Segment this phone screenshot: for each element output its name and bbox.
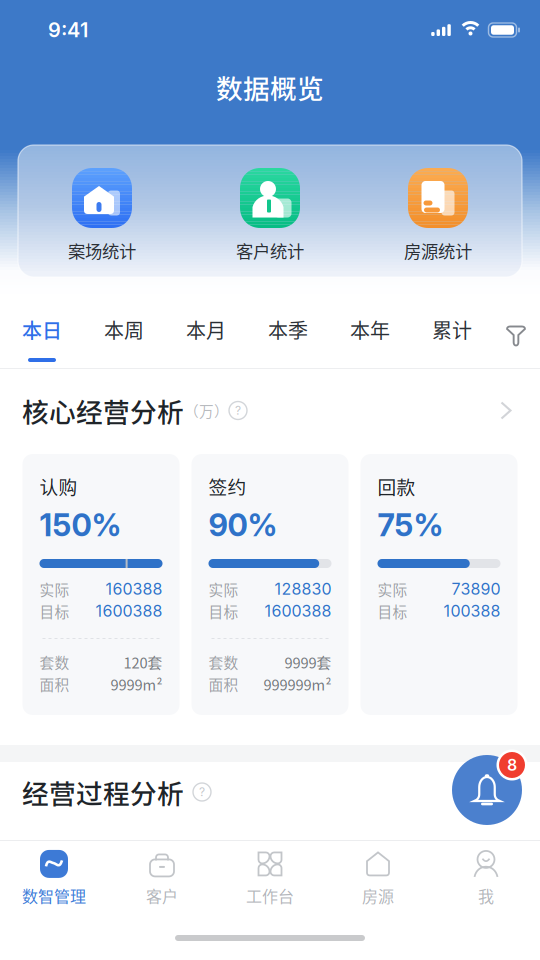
staticText: 8 [507,755,517,775]
staticText: 150% [39,506,121,543]
button[interactable]: 数智管理 [0,847,108,909]
staticText: 数智管理 [22,884,86,907]
staticText: 90% [208,506,277,543]
staticText: 实际 [208,578,238,600]
staticText: 经营过程分析 [22,773,184,811]
staticText: 本日 [22,315,62,344]
button[interactable]: 本日 [1,304,83,368]
staticText: 我 [478,884,494,907]
staticText: 回款 [377,472,415,499]
staticText: 本季 [268,315,308,344]
staticText: 套数 [39,651,69,673]
button[interactable]: 工作台 [216,847,324,909]
button[interactable]: 本月 [165,304,247,368]
staticText: 73890 [451,579,500,599]
staticText: 案场统计 [68,238,136,263]
button[interactable]: 本年 [329,304,411,368]
button[interactable]: Notifications [439,742,535,838]
button[interactable]: 房源 [324,847,432,909]
button[interactable]: 客户统计 [186,145,354,277]
button[interactable]: 我 [432,847,540,909]
staticText: 本周 [104,315,144,344]
staticText: 实际 [39,578,69,600]
staticText: 1600388 [264,601,331,621]
button[interactable]: 回款 [360,454,517,715]
staticText: 目标 [377,600,407,622]
button[interactable]: 案场统计 [18,145,186,277]
button[interactable]: 本季 [247,304,329,368]
staticText: 房源统计 [404,238,472,263]
staticText: 本年 [350,315,390,344]
staticText: 实际 [377,578,407,600]
staticText: 120套 [123,651,162,673]
button[interactable]: 客户 [108,847,216,909]
button[interactable]: Filter [493,304,539,368]
staticText: 目标 [208,600,238,622]
staticText: 房源 [362,884,394,907]
staticText: 认购 [39,472,77,499]
staticText: 客户统计 [236,238,304,263]
staticText: 套数 [208,651,238,673]
staticText: 累计 [432,315,472,344]
staticText: 客户 [146,884,178,907]
button[interactable]: 累计 [411,304,493,368]
button[interactable]: 签约 [191,454,348,715]
staticText: 9999m² [110,673,162,695]
staticText: 128830 [274,579,331,599]
staticText: 面积 [39,673,69,695]
staticText: 160388 [105,579,162,599]
staticText: 9999套 [284,651,331,673]
staticText: 工作台 [246,884,294,907]
staticText: ? [235,403,241,418]
staticText: 999999m² [263,673,331,695]
staticText: 75% [377,506,443,543]
staticText: （万） [184,400,229,421]
staticText: 100388 [443,601,500,621]
staticText: 签约 [208,472,246,499]
staticText: ? [199,785,205,799]
button[interactable]: More [486,388,526,432]
button[interactable]: 房源统计 [354,145,522,277]
staticText: 9:41 [48,18,88,42]
staticText: 1600388 [95,601,162,621]
button[interactable]: 认购 [22,454,179,715]
staticText: 目标 [39,600,69,622]
staticText: 数据概览 [216,68,324,106]
button[interactable]: 本周 [83,304,165,368]
staticText: 面积 [208,673,238,695]
staticText: 本月 [186,315,226,344]
staticText: 核心经营分析 [22,391,184,430]
